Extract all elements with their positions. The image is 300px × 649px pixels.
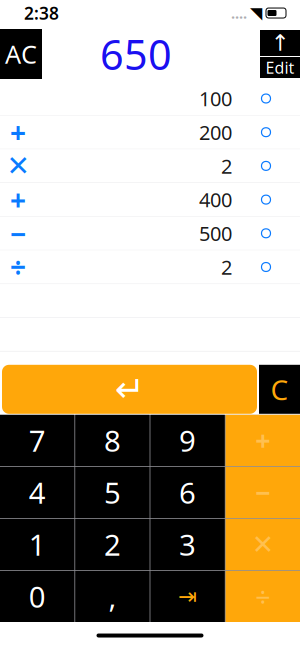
staticText: 2 <box>221 153 232 179</box>
button[interactable]: Share <box>260 30 300 56</box>
button[interactable]: + <box>0 183 300 217</box>
button[interactable]: 7 <box>0 415 74 466</box>
button[interactable]: Decimal separator <box>75 571 150 622</box>
staticText: 8 <box>104 421 121 460</box>
button[interactable]: Enter <box>2 365 257 414</box>
staticText: Edit <box>265 57 294 78</box>
staticText: , <box>108 577 116 616</box>
staticText: 7 <box>29 421 46 460</box>
staticText: + <box>10 114 26 151</box>
staticText: 2 <box>104 525 121 564</box>
staticText: 650 <box>100 27 172 81</box>
button[interactable]: 2 <box>75 519 150 570</box>
staticText: 5 <box>104 473 121 512</box>
staticText: ⇥ <box>178 583 197 609</box>
staticText: − <box>255 475 270 510</box>
button[interactable]: − <box>0 217 300 250</box>
staticText: 2:38 <box>24 1 59 24</box>
staticText: ↵ <box>114 369 144 410</box>
button[interactable]: ÷ <box>0 250 300 284</box>
staticText: 0 <box>29 577 46 616</box>
staticText: 500 <box>199 220 232 247</box>
button[interactable] <box>0 82 300 116</box>
staticText: + <box>255 423 270 458</box>
button[interactable]: 5 <box>75 467 150 518</box>
button[interactable]: 9 <box>150 415 225 466</box>
staticText: ÷ <box>255 579 270 614</box>
button[interactable]: Plus <box>226 415 300 466</box>
staticText: ↑ <box>270 30 289 56</box>
staticText: 2 <box>221 254 232 280</box>
button[interactable]: Clear <box>259 365 300 414</box>
button[interactable]: 4 <box>0 467 74 518</box>
staticText: ✕ <box>252 529 274 560</box>
staticText: ◥ <box>250 4 262 22</box>
button[interactable]: Minus <box>226 467 300 518</box>
staticText: ✕ <box>6 150 29 182</box>
staticText: − <box>10 215 26 252</box>
button[interactable]: Edit <box>260 57 300 78</box>
staticText: 400 <box>199 186 232 213</box>
button[interactable]: Tab <box>150 571 225 622</box>
button[interactable]: 3 <box>150 519 225 570</box>
button[interactable]: Divide <box>226 571 300 622</box>
button[interactable]: 1 <box>0 519 74 570</box>
staticText: C <box>270 371 288 408</box>
button[interactable]: 8 <box>75 415 150 466</box>
button[interactable]: AC <box>0 29 42 79</box>
button[interactable]: 0 <box>0 571 74 622</box>
staticText: ÷ <box>10 248 26 286</box>
staticText: 4 <box>29 473 46 512</box>
staticText: 200 <box>199 119 232 145</box>
staticText: 9 <box>179 421 196 460</box>
staticText: + <box>10 181 26 218</box>
staticText: 3 <box>179 525 196 564</box>
button[interactable]: + <box>0 116 300 149</box>
staticText: 1 <box>29 525 46 564</box>
staticText: AC <box>5 37 37 71</box>
button[interactable]: Multiply <box>226 519 300 570</box>
button[interactable]: ✕ <box>0 149 300 183</box>
staticText: 100 <box>199 85 232 112</box>
staticText: 6 <box>179 473 196 512</box>
staticText: .... <box>231 3 247 23</box>
button[interactable]: 6 <box>150 467 225 518</box>
